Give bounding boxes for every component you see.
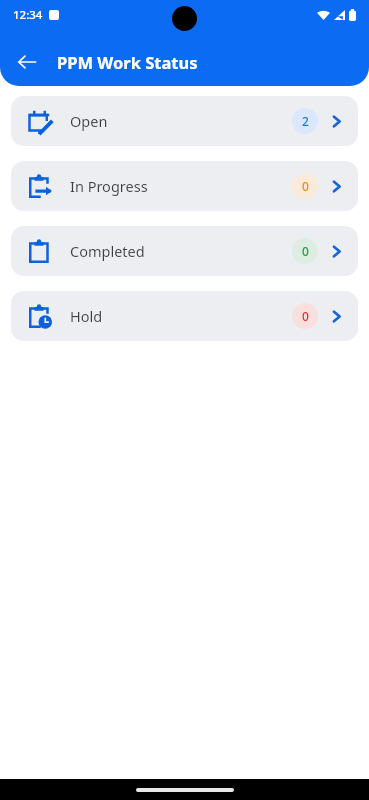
staticText: Hold (70, 306, 103, 326)
staticText: 2 (302, 113, 309, 129)
button[interactable]: Back (8, 43, 46, 81)
staticText: 12:34 (13, 7, 43, 23)
staticText: 0 (302, 308, 309, 324)
button[interactable]: In Progress (11, 161, 358, 211)
button[interactable]: Completed (11, 226, 358, 276)
button[interactable]: Hold (11, 291, 358, 341)
staticText: Open (70, 111, 108, 131)
staticText: 0 (302, 243, 309, 259)
staticText: In Progress (70, 176, 148, 196)
staticText: 0 (302, 178, 309, 194)
staticText: Completed (70, 241, 145, 261)
staticText: PPM Work Status (57, 51, 198, 73)
button[interactable]: Open (11, 96, 358, 146)
